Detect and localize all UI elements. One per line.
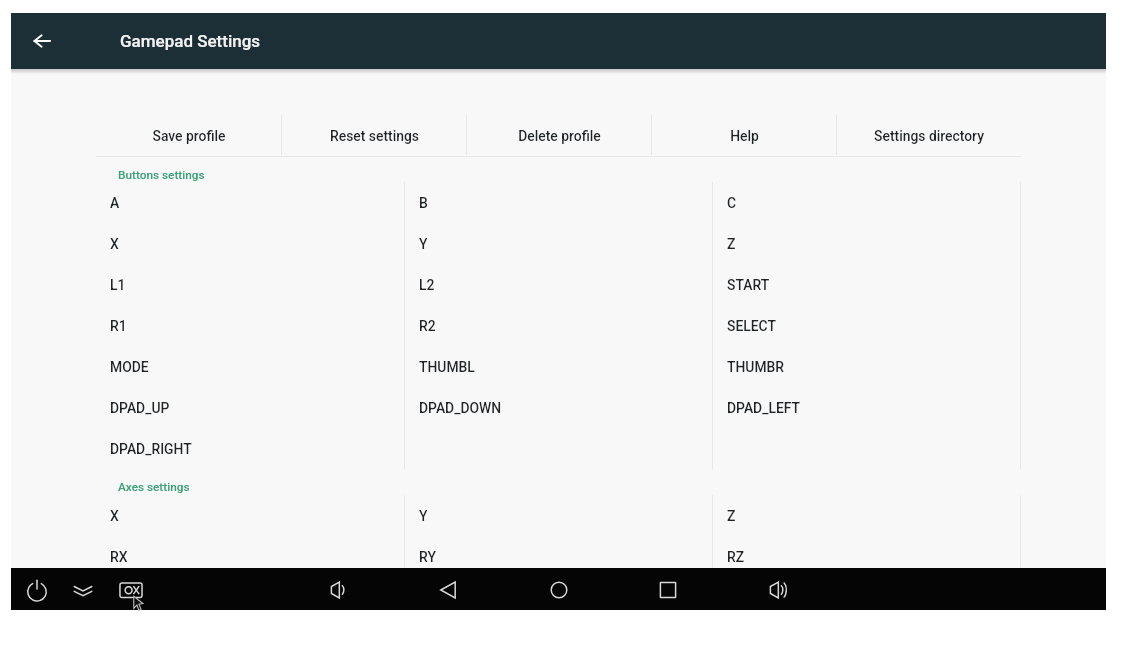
button[interactable]: THUMBL <box>405 346 712 387</box>
staticText: L2 <box>419 277 435 293</box>
button[interactable]: Screenshot <box>110 568 152 610</box>
staticText: THUMBL <box>419 359 475 375</box>
staticText: C <box>727 195 737 211</box>
staticText: SELECT <box>727 318 776 334</box>
button[interactable]: Settings directory <box>837 115 1021 156</box>
staticText: DPAD_UP <box>110 400 170 416</box>
staticText: RY <box>419 549 436 565</box>
button[interactable]: Save profile <box>96 115 281 156</box>
button[interactable]: Y <box>405 223 712 264</box>
button[interactable]: Reset settings <box>282 115 466 156</box>
button[interactable]: DPAD_DOWN <box>405 387 712 428</box>
button[interactable]: Y <box>405 495 712 536</box>
staticText: Help <box>730 128 759 144</box>
button[interactable]: Volume up <box>756 568 798 610</box>
button[interactable]: Back <box>20 19 64 63</box>
button[interactable]: MODE <box>96 346 404 387</box>
staticText: Axes settings <box>118 480 190 494</box>
staticText: Reset settings <box>330 128 419 144</box>
button[interactable]: Home <box>538 568 580 610</box>
staticText: X <box>110 236 119 252</box>
button[interactable]: DPAD_RIGHT <box>96 428 404 469</box>
button[interactable]: Expand <box>62 568 104 610</box>
staticText: Save profile <box>152 128 226 144</box>
button[interactable]: A <box>96 182 404 223</box>
button[interactable]: SELECT <box>713 305 1020 346</box>
button[interactable]: X <box>96 223 404 264</box>
staticText: Y <box>419 508 428 524</box>
button[interactable]: Recents <box>647 568 689 610</box>
button[interactable]: Z <box>713 495 1020 536</box>
button[interactable]: R2 <box>405 305 712 346</box>
button[interactable]: DPAD_UP <box>96 387 404 428</box>
button[interactable]: X <box>96 495 404 536</box>
staticText: A <box>110 195 120 211</box>
staticText: RX <box>110 549 128 565</box>
staticText: Gamepad Settings <box>120 31 261 51</box>
staticText: RZ <box>727 549 745 565</box>
button[interactable]: Volume down <box>317 568 359 610</box>
staticText: B <box>419 195 428 211</box>
staticText: Z <box>727 236 736 252</box>
staticText: DPAD_DOWN <box>419 400 502 416</box>
staticText: START <box>727 277 770 293</box>
staticText: DPAD_RIGHT <box>110 441 192 457</box>
button[interactable]: Back <box>427 568 469 610</box>
button[interactable]: THUMBR <box>713 346 1020 387</box>
button[interactable]: Z <box>713 223 1020 264</box>
button[interactable]: Help <box>652 115 836 156</box>
button[interactable]: RX <box>96 536 404 577</box>
button[interactable]: Delete profile <box>467 115 651 156</box>
button[interactable]: RZ <box>713 536 1020 577</box>
staticText: R1 <box>110 318 127 334</box>
button[interactable]: START <box>713 264 1020 305</box>
button[interactable]: L2 <box>405 264 712 305</box>
staticText: R2 <box>419 318 436 334</box>
button[interactable]: C <box>713 182 1020 223</box>
staticText: THUMBR <box>727 359 785 375</box>
button[interactable]: DPAD_LEFT <box>713 387 1020 428</box>
staticText: L1 <box>110 277 126 293</box>
button[interactable]: R1 <box>96 305 404 346</box>
staticText: Settings directory <box>874 128 984 144</box>
staticText: Buttons settings <box>118 168 205 182</box>
staticText: MODE <box>110 359 149 375</box>
button[interactable]: B <box>405 182 712 223</box>
button[interactable]: L1 <box>96 264 404 305</box>
staticText: Z <box>727 508 736 524</box>
staticText: Delete profile <box>518 128 601 144</box>
staticText: Y <box>419 236 428 252</box>
staticText: DPAD_LEFT <box>727 400 800 416</box>
button[interactable]: RY <box>405 536 712 577</box>
button[interactable]: Power <box>16 568 58 610</box>
staticText: X <box>110 508 119 524</box>
